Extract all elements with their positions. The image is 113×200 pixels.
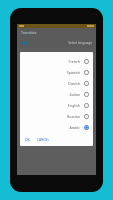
button[interactable]: French [20,56,93,67]
button[interactable]: Translate [21,30,37,35]
button[interactable]: English [20,100,93,111]
staticText: Danish [68,81,80,86]
other: Not selected [84,92,89,97]
other: Not selected [84,70,89,75]
button[interactable]: OK [24,137,31,143]
other: Not selected [84,59,89,64]
staticText: Arabic [69,125,80,130]
staticText: French [68,59,80,64]
other: Not selected [84,81,89,86]
staticText: Russian [66,114,80,119]
staticText: Italian [69,92,80,97]
button[interactable]: Select language [68,41,92,45]
other: Not selected [84,114,89,119]
staticText: CANCEL [37,138,50,142]
staticText: Spanish [66,70,80,75]
button[interactable]: Arabic [20,122,93,133]
button[interactable]: Spanish [20,67,93,78]
button[interactable]: Danish [20,78,93,89]
button[interactable]: Italian [20,89,93,100]
button[interactable]: CANCEL [36,137,51,143]
staticText: English [67,103,80,108]
button[interactable]: Language toggle [21,41,28,45]
other: Not selected [84,103,89,108]
button[interactable]: Russian [20,111,93,122]
other: Selected [84,125,89,130]
staticText: OK [25,138,30,142]
